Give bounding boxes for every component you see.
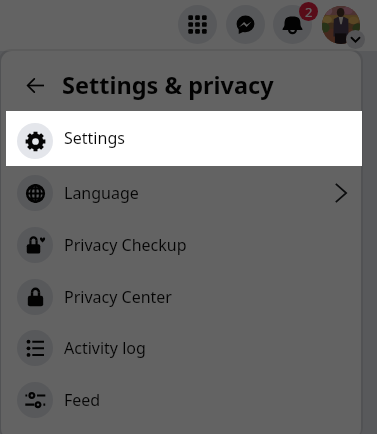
button[interactable]: Settings — [6, 115, 362, 167]
button[interactable]: Settings — [6, 111, 362, 166]
staticText: Activity log — [64, 337, 146, 359]
staticText: Settings — [64, 127, 125, 149]
button[interactable]: Profile — [322, 6, 360, 44]
button[interactable]: Notifications — [273, 5, 312, 44]
button[interactable]: Messenger — [226, 5, 265, 44]
staticText: Feed — [64, 389, 101, 411]
staticText: Privacy Center — [64, 286, 172, 308]
staticText: Settings — [64, 130, 125, 152]
staticText: Privacy Checkup — [64, 234, 187, 256]
button[interactable]: Activity log — [6, 322, 362, 374]
staticText: Settings & privacy — [62, 69, 274, 101]
button[interactable]: Feed — [6, 374, 362, 426]
button[interactable]: Back — [22, 72, 48, 98]
staticText: 2 — [305, 3, 313, 21]
button[interactable]: Language — [6, 167, 362, 219]
button[interactable]: Privacy Center — [6, 271, 362, 323]
button[interactable]: Apps — [178, 5, 217, 44]
staticText: Language — [64, 182, 139, 204]
button[interactable]: Privacy Checkup — [6, 219, 362, 271]
